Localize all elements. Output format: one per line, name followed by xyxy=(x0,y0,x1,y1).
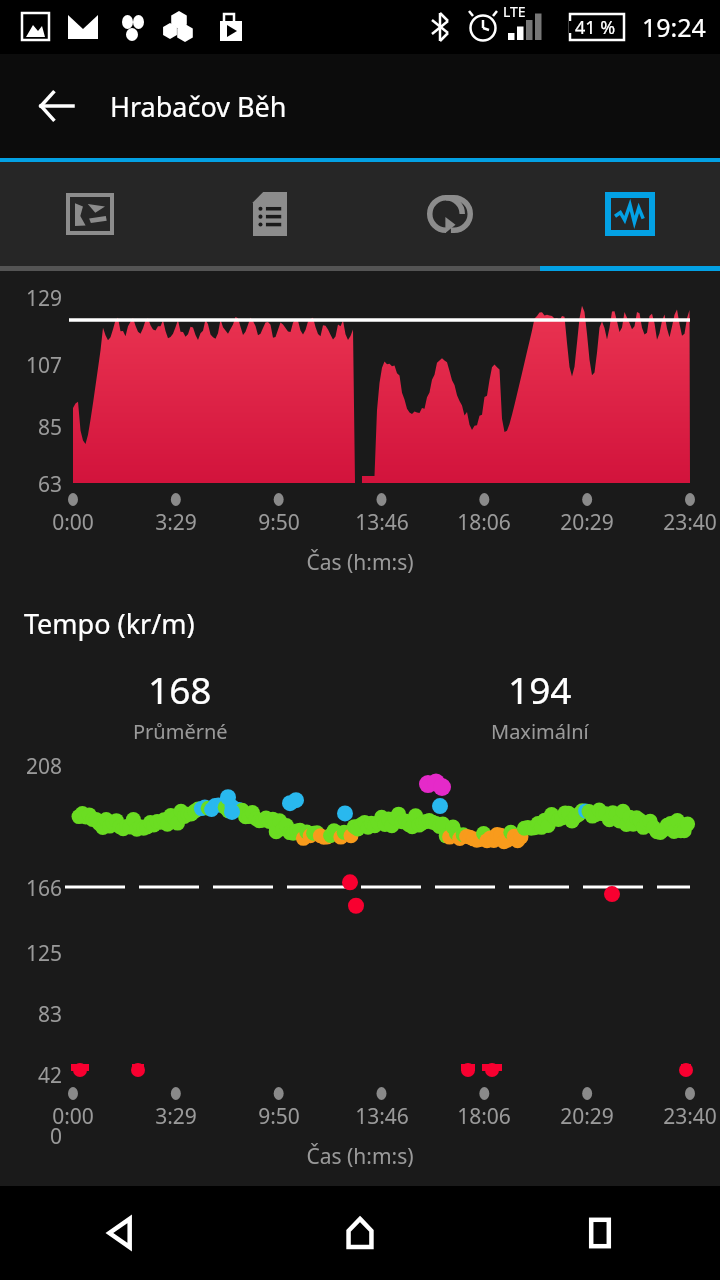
button[interactable]: Details xyxy=(180,162,360,266)
staticText: Tempo (kr/m) xyxy=(24,605,195,642)
staticText: 107 xyxy=(0,351,62,380)
staticText: 208 xyxy=(0,752,62,781)
button[interactable]: Map xyxy=(0,162,180,266)
staticText: Čas (h:m:s) xyxy=(0,548,720,577)
button[interactable]: Charts xyxy=(540,162,720,266)
staticText: 85 xyxy=(0,413,62,442)
staticText: 23:40 xyxy=(640,508,720,537)
staticText: 83 xyxy=(0,1000,62,1029)
staticText: 194 xyxy=(508,664,572,714)
staticText: 20:29 xyxy=(537,508,637,537)
staticText: 20:29 xyxy=(537,1102,637,1131)
staticText: 19:24 xyxy=(642,10,706,44)
staticText: 9:50 xyxy=(229,1102,329,1131)
staticText: Průměrné xyxy=(133,718,228,745)
staticText: 18:06 xyxy=(434,1102,534,1131)
staticText: 41 % xyxy=(575,15,616,40)
staticText: Maximální xyxy=(491,718,589,745)
staticText: LTE xyxy=(503,2,526,21)
staticText: 166 xyxy=(0,874,62,903)
button[interactable]: Laps xyxy=(360,162,540,266)
button[interactable]: Back xyxy=(30,80,82,132)
staticText: 13:46 xyxy=(332,508,432,537)
staticText: 0:00 xyxy=(23,1102,123,1131)
staticText: 3:29 xyxy=(126,1102,226,1131)
staticText: Hrabačov Běh xyxy=(110,88,287,125)
staticText: 42 xyxy=(0,1061,62,1090)
staticText: 3:29 xyxy=(126,508,226,537)
staticText: 0 xyxy=(0,1122,62,1151)
staticText: 125 xyxy=(0,939,62,968)
staticText: 23:40 xyxy=(640,1102,720,1131)
button[interactable]: Recents xyxy=(480,1186,720,1280)
button[interactable]: Home xyxy=(240,1186,480,1280)
staticText: 13:46 xyxy=(332,1102,432,1131)
staticText: 129 xyxy=(0,284,62,313)
staticText: 18:06 xyxy=(434,508,534,537)
staticText: Čas (h:m:s) xyxy=(0,1142,720,1171)
staticText: 9:50 xyxy=(229,508,329,537)
button[interactable]: Back xyxy=(0,1186,240,1280)
staticText: 0:00 xyxy=(23,508,123,537)
staticText: 63 xyxy=(0,470,62,499)
staticText: 168 xyxy=(148,664,212,714)
